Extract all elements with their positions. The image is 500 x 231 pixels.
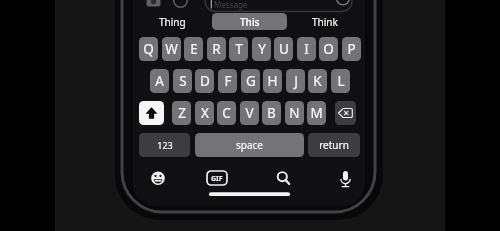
staticText: J (294, 72, 298, 90)
button[interactable]: U (274, 37, 293, 61)
button[interactable]: F (218, 69, 237, 93)
button[interactable]: Think (292, 13, 358, 30)
button[interactable] (139, 101, 164, 125)
button[interactable]: 123 (139, 133, 190, 157)
button[interactable]: O (319, 37, 338, 61)
button[interactable]: return (308, 133, 360, 157)
button[interactable]: T (229, 37, 248, 61)
staticText: V (245, 104, 254, 122)
button[interactable]: E (184, 37, 203, 61)
button[interactable]: D (195, 69, 214, 93)
staticText: space (236, 138, 263, 152)
staticText: P (347, 40, 356, 58)
staticText: E (190, 40, 198, 58)
staticText: U (279, 40, 289, 58)
button[interactable] (274, 169, 291, 186)
button[interactable]: N (285, 101, 304, 125)
button[interactable]: B (262, 101, 281, 125)
button[interactable]: L (331, 69, 350, 93)
button[interactable]: Thing (139, 13, 205, 30)
button[interactable]: M (307, 101, 326, 125)
button[interactable]: J (286, 69, 305, 93)
button[interactable]: C (217, 101, 236, 125)
button[interactable] (337, 169, 354, 188)
button[interactable]: W (162, 37, 181, 61)
button[interactable] (335, 101, 356, 125)
staticText: K (313, 72, 322, 90)
button[interactable]: I (297, 37, 316, 61)
staticText: T (235, 40, 243, 58)
button[interactable] (207, 171, 227, 185)
button[interactable]: H (263, 69, 282, 93)
staticText: X (201, 104, 209, 122)
staticText: Think (312, 15, 338, 29)
staticText: This (240, 15, 260, 29)
button[interactable]: V (240, 101, 259, 125)
staticText: A (155, 72, 164, 90)
staticText: O (323, 40, 334, 58)
staticText: N (289, 104, 300, 122)
button[interactable]: This (212, 13, 287, 30)
staticText: GIF (211, 174, 223, 184)
staticText: Message (214, 0, 248, 10)
button[interactable]: Z (172, 101, 191, 125)
button[interactable]: S (173, 69, 192, 93)
button[interactable] (150, 170, 167, 187)
button[interactable]: P (342, 37, 361, 61)
staticText: B (267, 104, 276, 122)
button[interactable]: G (241, 69, 260, 93)
button[interactable]: R (207, 37, 226, 61)
button[interactable]: space (195, 133, 304, 157)
staticText: H (267, 72, 278, 90)
staticText: C (222, 104, 231, 122)
staticText: L (337, 72, 345, 90)
staticText: G (246, 72, 256, 90)
button[interactable]: Y (252, 37, 271, 61)
staticText: M (310, 104, 323, 122)
staticText: S (179, 72, 187, 90)
button[interactable]: X (195, 101, 214, 125)
button[interactable]: Q (139, 37, 158, 61)
staticText: Thing (159, 15, 186, 29)
staticText: Z (178, 104, 186, 122)
staticText: R (212, 40, 221, 58)
staticText: 123 (157, 139, 173, 151)
button[interactable] (205, 0, 352, 12)
staticText: W (165, 40, 178, 58)
button[interactable]: A (150, 69, 169, 93)
staticText: Q (143, 40, 154, 58)
staticText: I (304, 40, 309, 58)
staticText: Y (258, 40, 266, 58)
staticText: return (319, 138, 349, 152)
button[interactable]: K (308, 69, 327, 93)
staticText: F (224, 72, 232, 90)
staticText: D (200, 72, 210, 90)
